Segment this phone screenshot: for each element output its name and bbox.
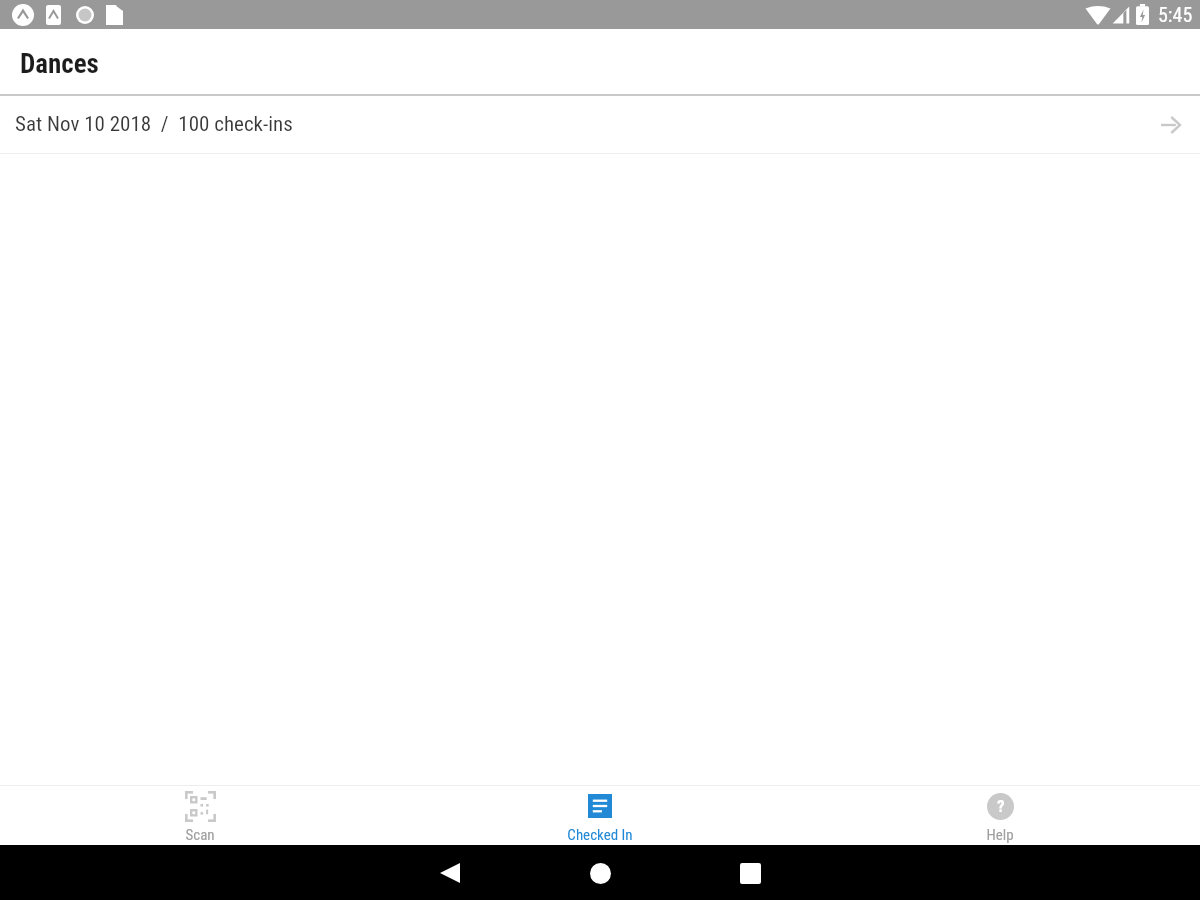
button[interactable]: ?: [800, 786, 1200, 845]
staticText: ?: [997, 796, 1005, 816]
staticText: Dances: [20, 48, 99, 80]
staticText: Checked In: [567, 826, 633, 844]
button[interactable]: Back: [426, 849, 474, 897]
staticText: Scan: [185, 826, 215, 844]
button[interactable]: Recent apps: [726, 849, 774, 897]
staticText: 5:45: [1158, 3, 1193, 26]
button[interactable]: Scan: [0, 786, 400, 845]
other: Open event: [1161, 117, 1180, 133]
button[interactable]: Home: [576, 849, 624, 897]
staticText: Sat Nov 10 2018 / 100 check-ins: [15, 112, 293, 137]
button[interactable]: Sat Nov 10 2018 / 100 check-ins: [0, 96, 1200, 153]
button[interactable]: Checked In: [400, 786, 800, 845]
staticText: Help: [986, 826, 1014, 844]
